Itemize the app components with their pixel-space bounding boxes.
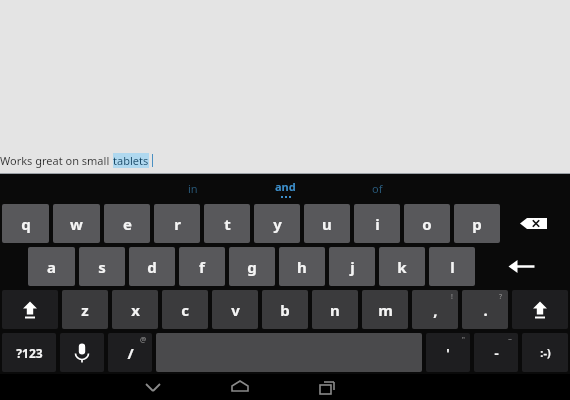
button[interactable]: k bbox=[379, 247, 425, 286]
button[interactable]: l bbox=[429, 247, 475, 286]
button[interactable]: g bbox=[229, 247, 275, 286]
button[interactable]: n bbox=[312, 290, 358, 329]
button[interactable]: ?123 bbox=[2, 333, 56, 372]
button[interactable]: q bbox=[2, 204, 49, 243]
button[interactable]: . bbox=[462, 290, 508, 329]
staticText: q bbox=[21, 214, 31, 234]
staticText: j bbox=[350, 257, 355, 277]
button[interactable]: Enter bbox=[479, 247, 568, 286]
staticText: r bbox=[174, 214, 181, 234]
button[interactable]: :-) bbox=[522, 333, 568, 372]
staticText: g bbox=[247, 257, 257, 277]
staticText: :-) bbox=[540, 345, 551, 360]
button[interactable]: i bbox=[354, 204, 400, 243]
staticText: ?123 bbox=[16, 345, 43, 361]
staticText: w bbox=[70, 214, 83, 234]
button[interactable]: Home bbox=[216, 374, 264, 400]
button[interactable]: p bbox=[454, 204, 500, 243]
staticText: - bbox=[494, 344, 499, 362]
staticText: ? bbox=[499, 292, 503, 302]
button[interactable]: Shift bbox=[512, 290, 568, 329]
button[interactable]: / bbox=[108, 333, 152, 372]
staticText: h bbox=[297, 257, 307, 277]
button[interactable]: f bbox=[179, 247, 225, 286]
staticText: tablets bbox=[113, 153, 149, 168]
staticText: e bbox=[123, 214, 132, 234]
button[interactable]: m bbox=[362, 290, 408, 329]
staticText: y bbox=[273, 214, 282, 234]
staticText: c bbox=[181, 300, 189, 320]
button[interactable]: e bbox=[104, 204, 150, 243]
staticText: and bbox=[275, 179, 296, 194]
staticText: v bbox=[231, 300, 240, 320]
button[interactable]: u bbox=[304, 204, 350, 243]
staticText: l bbox=[450, 257, 455, 277]
staticText: u bbox=[322, 214, 332, 234]
staticText: ~ bbox=[508, 335, 513, 345]
staticText: a bbox=[47, 257, 56, 277]
button[interactable]: in bbox=[147, 174, 239, 202]
button[interactable]: Shift bbox=[2, 290, 58, 329]
button[interactable]: j bbox=[329, 247, 375, 286]
button[interactable]: Voice input bbox=[60, 333, 104, 372]
staticText: in bbox=[188, 181, 198, 196]
button[interactable]: - bbox=[474, 333, 518, 372]
button[interactable]: o bbox=[404, 204, 450, 243]
button[interactable]: , bbox=[412, 290, 458, 329]
button[interactable]: c bbox=[162, 290, 208, 329]
staticText: of bbox=[372, 181, 383, 196]
button[interactable]: h bbox=[279, 247, 325, 286]
staticText: n bbox=[330, 300, 340, 320]
button[interactable]: v bbox=[212, 290, 258, 329]
button[interactable]: Hide keyboard bbox=[128, 374, 177, 400]
staticText: p bbox=[472, 214, 482, 234]
button[interactable]: and bbox=[239, 174, 331, 202]
staticText: o bbox=[422, 214, 432, 234]
staticText: d bbox=[147, 257, 157, 277]
staticText: , bbox=[433, 300, 438, 320]
button[interactable]: ' bbox=[426, 333, 470, 372]
staticText: z bbox=[81, 300, 89, 320]
button[interactable]: t bbox=[204, 204, 250, 243]
staticText: . bbox=[483, 300, 488, 320]
button[interactable]: r bbox=[154, 204, 200, 243]
button[interactable]: d bbox=[129, 247, 175, 286]
button[interactable]: of bbox=[331, 174, 423, 202]
staticText: Works great on small bbox=[0, 153, 113, 168]
staticText: m bbox=[378, 300, 393, 320]
staticText: k bbox=[397, 257, 407, 277]
staticText: ' bbox=[446, 344, 450, 362]
staticText: / bbox=[127, 343, 134, 363]
staticText: ! bbox=[451, 292, 453, 302]
staticText: @ bbox=[140, 335, 147, 345]
button[interactable]: b bbox=[262, 290, 308, 329]
staticText: b bbox=[280, 300, 290, 320]
button[interactable]: Recent apps bbox=[303, 374, 351, 400]
staticText: " bbox=[462, 335, 465, 345]
staticText: f bbox=[199, 257, 205, 277]
staticText: t bbox=[224, 214, 231, 234]
button[interactable]: Backspace bbox=[504, 204, 568, 243]
button[interactable]: z bbox=[62, 290, 108, 329]
staticText: i bbox=[375, 214, 380, 234]
button[interactable]: a bbox=[28, 247, 75, 286]
button[interactable]: x bbox=[112, 290, 158, 329]
staticText: s bbox=[98, 257, 106, 277]
staticText: x bbox=[131, 300, 140, 320]
button[interactable]: y bbox=[254, 204, 300, 243]
button[interactable]: w bbox=[53, 204, 100, 243]
button[interactable]: s bbox=[79, 247, 125, 286]
